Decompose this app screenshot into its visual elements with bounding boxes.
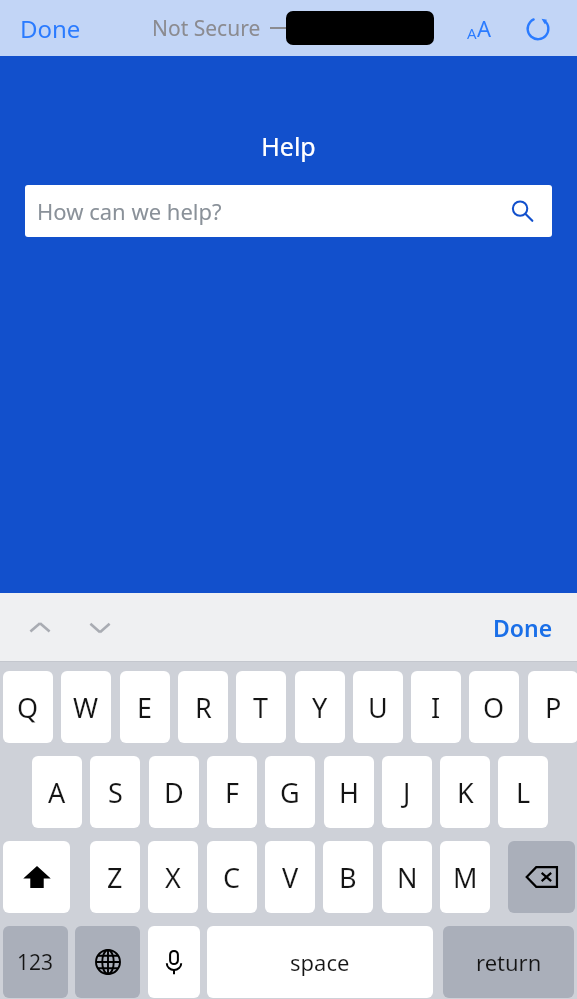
button[interactable]: Shift: [3, 841, 70, 913]
button[interactable]: T: [236, 671, 286, 743]
button[interactable]: O: [469, 671, 519, 743]
staticText: Help: [0, 129, 577, 163]
staticText: space: [290, 947, 350, 977]
button[interactable]: X: [148, 841, 198, 913]
staticText: M: [453, 859, 478, 896]
button[interactable]: F: [207, 756, 257, 828]
staticText: Z: [107, 859, 123, 896]
button[interactable]: R: [178, 671, 228, 743]
staticText: P: [545, 689, 562, 726]
staticText: K: [457, 774, 474, 811]
staticText: T: [253, 689, 269, 726]
staticText: F: [225, 774, 240, 811]
button[interactable]: L: [498, 756, 548, 828]
staticText: H: [339, 774, 360, 811]
button[interactable]: Reload: [519, 9, 557, 47]
staticText: O: [483, 689, 505, 726]
button[interactable]: B: [323, 841, 373, 913]
button[interactable]: Previous field: [18, 606, 62, 650]
staticText: Q: [17, 689, 39, 726]
button[interactable]: K: [440, 756, 490, 828]
button[interactable]: U: [353, 671, 403, 743]
staticText: C: [223, 859, 241, 896]
staticText: W: [73, 689, 99, 726]
button[interactable]: D: [149, 756, 199, 828]
button[interactable]: S: [90, 756, 140, 828]
staticText: X: [165, 859, 181, 896]
button[interactable]: Next field: [78, 606, 122, 650]
button[interactable]: Q: [3, 671, 53, 743]
button[interactable]: I: [411, 671, 461, 743]
staticText: E: [137, 689, 153, 726]
button[interactable]: N: [382, 841, 432, 913]
staticText: L: [516, 774, 531, 811]
button[interactable]: return: [443, 926, 574, 998]
staticText: U: [368, 689, 388, 726]
button[interactable]: A: [32, 756, 82, 828]
staticText: A: [477, 13, 492, 43]
button[interactable]: Done: [485, 606, 561, 649]
staticText: How can we help?: [37, 196, 222, 226]
button[interactable]: Text size: [459, 8, 499, 48]
button[interactable]: E: [120, 671, 170, 743]
staticText: Y: [312, 689, 328, 726]
staticText: Done: [20, 12, 81, 45]
button[interactable]: J: [382, 756, 432, 828]
staticText: N: [397, 859, 418, 896]
button[interactable]: space: [207, 926, 433, 998]
button[interactable]: Y: [295, 671, 345, 743]
button[interactable]: M: [440, 841, 490, 913]
button[interactable]: V: [265, 841, 315, 913]
staticText: Not Secure: [152, 14, 261, 43]
button[interactable]: 123: [3, 926, 68, 998]
staticText: Done: [493, 612, 553, 643]
staticText: V: [282, 859, 299, 896]
button[interactable]: Z: [90, 841, 140, 913]
staticText: S: [108, 774, 123, 811]
button[interactable]: Done: [14, 6, 87, 51]
button[interactable]: P: [528, 671, 577, 743]
button[interactable]: How can we help?: [25, 185, 552, 237]
staticText: J: [403, 774, 411, 811]
staticText: A: [48, 774, 66, 811]
staticText: 123: [17, 948, 54, 977]
staticText: A: [467, 23, 477, 43]
staticText: B: [339, 859, 357, 896]
button[interactable]: Switch keyboard: [75, 926, 140, 998]
staticText: G: [280, 774, 300, 811]
staticText: return: [476, 947, 542, 977]
button[interactable]: H: [324, 756, 374, 828]
button[interactable]: Dictation: [148, 926, 200, 998]
other: Search: [509, 198, 535, 224]
button[interactable]: W: [61, 671, 111, 743]
staticText: D: [164, 774, 184, 811]
button[interactable]: Backspace: [508, 841, 575, 913]
staticText: I: [431, 689, 441, 726]
staticText: R: [195, 689, 212, 726]
button[interactable]: C: [207, 841, 257, 913]
button[interactable]: G: [265, 756, 315, 828]
